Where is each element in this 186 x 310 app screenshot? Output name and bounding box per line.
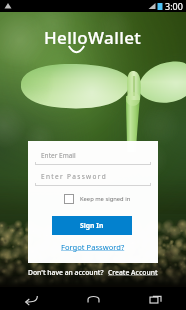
button[interactable]: Keep me signed in (64, 192, 131, 206)
button[interactable]: Back (22, 290, 40, 308)
staticText: Sign In (80, 221, 104, 230)
button[interactable]: Create Account (108, 268, 158, 277)
staticText: Enter Email (41, 151, 76, 160)
staticText: 3:00 (165, 0, 183, 12)
button[interactable]: Sign In (52, 216, 132, 235)
staticText: Don't have an account? (28, 268, 108, 277)
button[interactable]: Recents (146, 290, 164, 308)
staticText: Keep me signed in (80, 195, 131, 203)
staticText: HelloWallet (44, 26, 142, 49)
button[interactable]: Home (84, 290, 102, 308)
staticText: Enter Password (41, 172, 108, 181)
button[interactable]: Forgot Password? (61, 242, 125, 252)
